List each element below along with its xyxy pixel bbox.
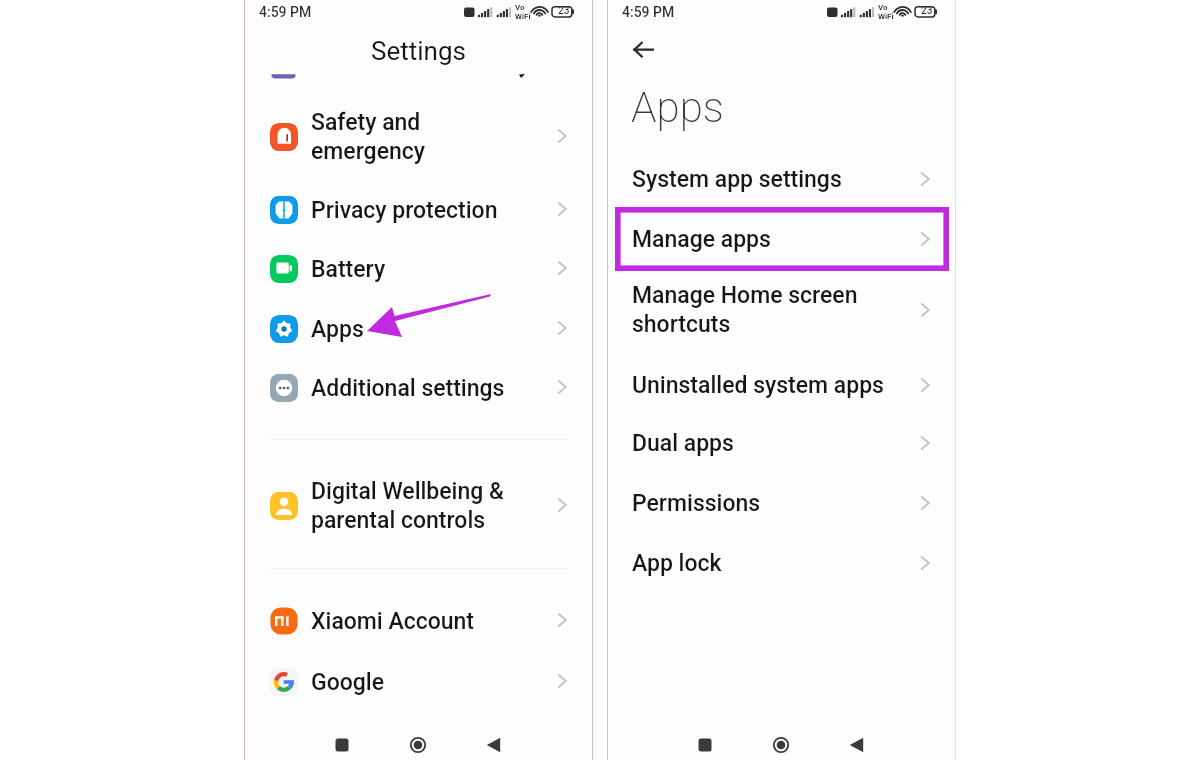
button[interactable]: Google — [245, 659, 592, 705]
staticText: 4:59 PM — [259, 4, 312, 20]
button[interactable]: Privacy protection — [245, 187, 592, 233]
staticText: Google — [311, 669, 384, 696]
staticText: 4:59 PM — [622, 4, 675, 20]
button[interactable]: Apps — [245, 306, 592, 352]
staticText: Uninstalled system apps — [632, 372, 884, 399]
staticText: Apps — [311, 316, 364, 343]
staticText: Battery — [311, 256, 386, 283]
button[interactable]: Additional settings — [245, 365, 592, 411]
staticText: Dual apps — [632, 430, 734, 457]
staticText: Permissions — [632, 490, 761, 517]
staticText: Apps — [631, 83, 724, 132]
button[interactable]: Back — [472, 723, 516, 760]
staticText: WiFi — [878, 12, 894, 21]
button[interactable]: Dual apps — [608, 420, 955, 466]
button[interactable]: Recent apps — [320, 723, 364, 760]
staticText: WiFi — [515, 12, 531, 21]
button[interactable]: Xiaomi Account — [245, 598, 592, 644]
button[interactable]: Uninstalled system apps — [608, 362, 955, 408]
staticText: Privacy protection — [311, 197, 498, 224]
button[interactable]: System app settings — [608, 156, 955, 202]
button[interactable]: Home — [759, 723, 803, 760]
staticText: Manage Home screen shortcuts — [632, 282, 858, 338]
staticText: Settings — [245, 36, 592, 66]
staticText: Manage apps — [632, 226, 771, 253]
staticText: Safety and emergency — [311, 109, 426, 165]
button[interactable]: Permissions — [608, 480, 955, 526]
button[interactable]: Battery — [245, 246, 592, 292]
button[interactable]: Recent apps — [683, 723, 727, 760]
button[interactable]: Manage Home screen shortcuts — [608, 281, 955, 339]
button[interactable]: Safety and emergency — [245, 108, 592, 166]
button[interactable]: Back — [623, 32, 659, 68]
staticText: Additional settings — [311, 375, 505, 402]
staticText: System app settings — [632, 166, 842, 193]
staticText: 23 — [921, 5, 933, 17]
staticText: Xiaomi Account — [311, 608, 475, 635]
staticText: Vo — [878, 3, 888, 12]
staticText: App lock — [632, 550, 722, 577]
button[interactable]: Digital Wellbeing & parental controls — [245, 477, 592, 535]
staticText: 23 — [558, 5, 570, 17]
button[interactable]: Home — [396, 723, 440, 760]
staticText: Vo — [515, 3, 525, 12]
button[interactable]: Back — [835, 723, 879, 760]
button[interactable]: Manage apps — [608, 216, 955, 262]
staticText: Digital Wellbeing & parental controls — [311, 478, 504, 534]
button[interactable]: App lock — [608, 540, 955, 586]
